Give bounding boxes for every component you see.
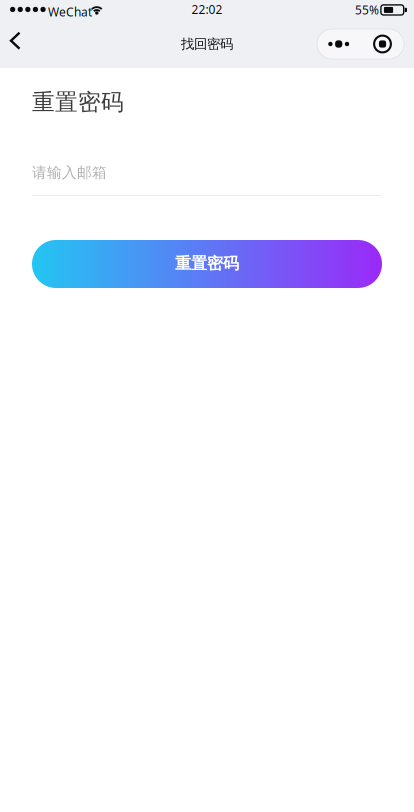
staticText: 22:02 (191, 1, 222, 17)
button[interactable]: More options (317, 29, 404, 59)
button[interactable]: 重置密码 (32, 240, 382, 288)
staticText: 55% (355, 2, 379, 18)
staticText: 重置密码 (175, 254, 239, 273)
staticText: 请输入邮箱 (32, 164, 107, 182)
button[interactable]: Back (0, 20, 44, 64)
staticText: WeChat (48, 4, 92, 20)
staticText: 找回密码 (181, 36, 233, 52)
staticText: 重置密码 (32, 88, 124, 116)
